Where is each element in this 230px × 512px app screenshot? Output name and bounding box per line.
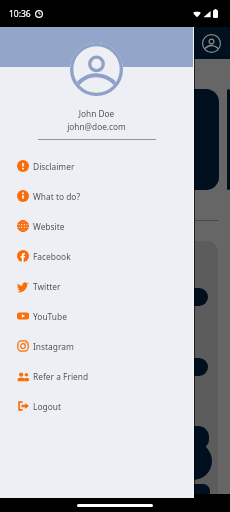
staticText: john@doe.com — [0, 121, 193, 132]
staticText: Twitter — [33, 281, 61, 292]
button[interactable]: Options — [154, 288, 208, 306]
staticText: What to do? — [33, 191, 81, 202]
staticText: Logout — [33, 401, 61, 412]
button[interactable]: Instagram — [0, 331, 193, 361]
button[interactable]: Logout — [0, 391, 193, 421]
button[interactable]: Facebook — [0, 241, 193, 271]
button[interactable]: Account — [199, 31, 223, 55]
button[interactable]: Disclaimer — [0, 151, 193, 181]
staticText: Facebook — [33, 251, 71, 262]
button[interactable] — [10, 89, 219, 190]
button[interactable]: Refer a Friend — [0, 361, 193, 391]
button[interactable]: Twitter — [0, 271, 193, 301]
button[interactable]: Add — [174, 442, 212, 480]
staticText: Instagram — [33, 341, 74, 352]
staticText: 10:36 — [9, 8, 31, 20]
button[interactable]: Options — [154, 358, 208, 376]
staticText: Options — [168, 292, 195, 302]
button[interactable]: Website — [0, 211, 193, 241]
button[interactable]: YouTube — [0, 301, 193, 331]
staticText: Options — [168, 362, 195, 372]
staticText: Website — [33, 221, 65, 232]
staticText: Disclaimer — [33, 161, 75, 172]
staticText: John Doe — [0, 108, 193, 119]
staticText: Refer a Friend — [33, 371, 89, 382]
button[interactable]: What to do? — [0, 181, 193, 211]
staticText: YouTube — [33, 311, 67, 322]
button[interactable]: Edit — [159, 426, 209, 450]
